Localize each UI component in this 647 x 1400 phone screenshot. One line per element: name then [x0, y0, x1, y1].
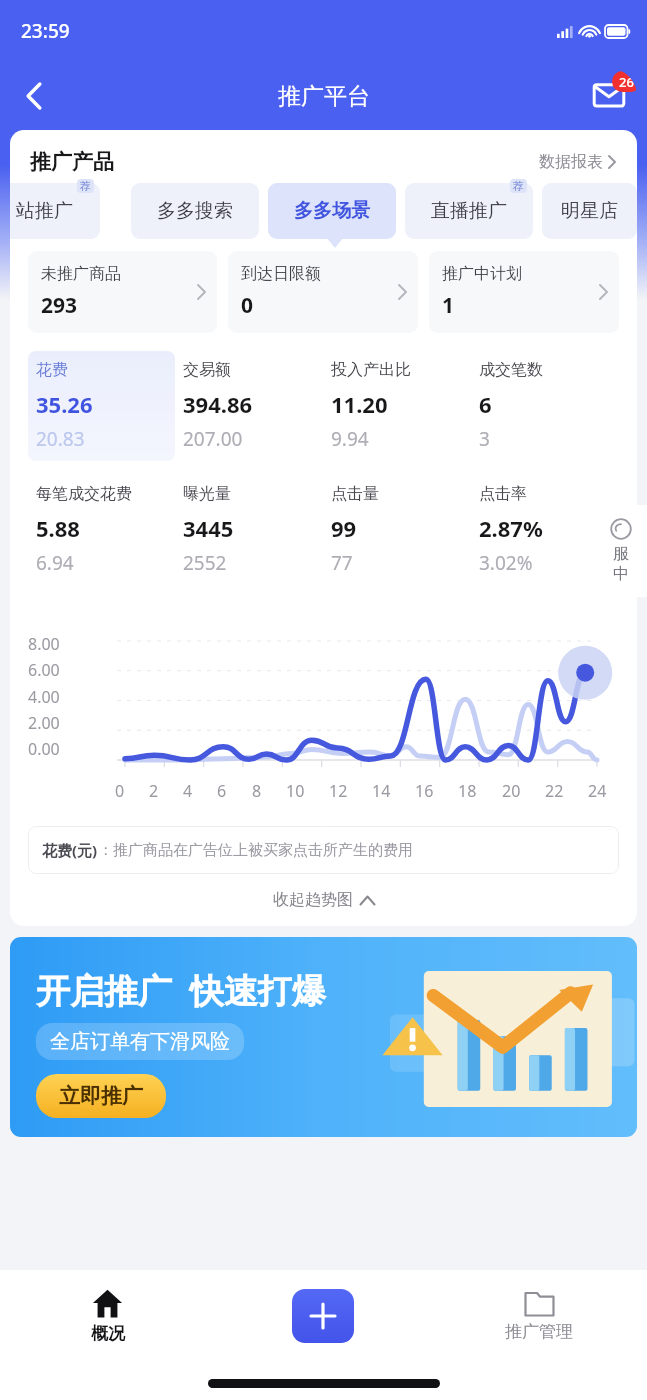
staticText: 立即推广	[59, 1083, 143, 1109]
button[interactable]: Service center	[595, 505, 647, 597]
staticText: 花费(元)	[42, 840, 98, 860]
staticText: ：推广商品在广告位上被买家点击所产生的费用	[98, 841, 413, 860]
staticText: 服	[613, 544, 629, 564]
staticText: 0	[115, 780, 125, 802]
button[interactable]: 站推广	[10, 183, 100, 239]
staticText: 概况	[91, 1323, 125, 1344]
staticText: 开启推广 快速打爆	[36, 967, 326, 1013]
button[interactable]: 开启推广 快速打爆	[10, 937, 637, 1137]
staticText: 18	[458, 780, 477, 802]
staticText: 207.00	[183, 426, 243, 452]
staticText: 8.00	[28, 633, 60, 655]
button[interactable]: 每笔成交花费	[28, 475, 175, 585]
staticText: 12	[329, 780, 348, 802]
staticText: 3.02%	[479, 550, 533, 576]
button[interactable]: 交易额	[175, 351, 323, 461]
staticText: 20.83	[36, 426, 85, 452]
button[interactable]: 收起趋势图	[10, 890, 637, 910]
staticText: 0.00	[28, 738, 60, 760]
staticText: 未推广商品	[41, 264, 121, 284]
staticText: 6.00	[28, 659, 60, 681]
staticText: 数据报表	[539, 152, 603, 172]
staticText: 24	[588, 780, 607, 802]
staticText: 投入产出比	[331, 360, 411, 380]
staticText: 成交笔数	[479, 360, 543, 380]
staticText: 推广平台	[278, 82, 370, 111]
staticText: 全店订单有下滑风险	[50, 1029, 230, 1054]
staticText: 推广管理	[505, 1321, 573, 1342]
staticText: 荐	[80, 179, 91, 193]
button[interactable]: Create	[292, 1289, 354, 1343]
staticText: 6.94	[36, 550, 74, 576]
staticText: 23:59	[21, 18, 70, 44]
staticText: 到达日限额	[241, 264, 321, 284]
staticText: 0	[241, 291, 254, 320]
staticText: 5.88	[36, 513, 80, 543]
staticText: 多多搜索	[157, 199, 233, 223]
button[interactable]: Back	[8, 70, 60, 122]
button[interactable]: 立即推广	[36, 1074, 166, 1118]
staticText: 2.87%	[479, 513, 543, 543]
button[interactable]: 明星店	[542, 183, 637, 239]
staticText: 荐	[513, 179, 524, 193]
staticText: 2.00	[28, 712, 60, 734]
staticText: 中	[613, 564, 629, 584]
staticText: 99	[331, 513, 357, 543]
button[interactable]: 点击量	[323, 475, 471, 585]
staticText: 明星店	[561, 199, 618, 223]
button[interactable]: 成交笔数	[471, 351, 619, 461]
staticText: 10	[286, 780, 305, 802]
staticText: 14	[372, 780, 391, 802]
button[interactable]: 点击率	[471, 475, 619, 585]
staticText: 点击量	[331, 484, 379, 504]
staticText: 1	[442, 291, 455, 320]
button[interactable]: 多多场景	[268, 183, 396, 239]
button[interactable]: 推广中计划	[429, 251, 619, 333]
staticText: 2	[149, 780, 159, 802]
button[interactable]: 投入产出比	[323, 351, 471, 461]
staticText: 26	[619, 73, 634, 91]
staticText: 推广中计划	[442, 264, 522, 284]
staticText: 6	[217, 780, 227, 802]
staticText: 点击率	[479, 484, 527, 504]
staticText: 花费	[36, 360, 68, 380]
button[interactable]: Messages, 26 unread	[581, 68, 637, 124]
staticText: 6	[479, 389, 492, 419]
staticText: 直播推广	[431, 199, 507, 223]
staticText: 22	[545, 780, 564, 802]
staticText: 8	[252, 780, 262, 802]
staticText: 2552	[183, 550, 227, 576]
button[interactable]: 到达日限额	[228, 251, 418, 333]
staticText: 11.20	[331, 389, 388, 419]
button[interactable]: 花费(元)	[28, 826, 619, 874]
button[interactable]: 推广管理	[431, 1270, 647, 1362]
staticText: 多多场景	[294, 199, 370, 223]
button[interactable]: 数据报表	[536, 149, 619, 175]
button[interactable]: 未推广商品	[28, 251, 217, 333]
staticText: 394.86	[183, 389, 253, 419]
button[interactable]: 概况	[0, 1270, 215, 1362]
staticText: 3445	[183, 513, 234, 543]
staticText: 3	[479, 426, 490, 452]
staticText: 20	[502, 780, 521, 802]
staticText: 293	[41, 291, 78, 320]
staticText: 站推广	[16, 199, 73, 223]
staticText: 4.00	[28, 686, 60, 708]
staticText: 16	[415, 780, 434, 802]
staticText: 77	[331, 550, 353, 576]
staticText: 9.94	[331, 426, 369, 452]
button[interactable]: 直播推广	[405, 183, 533, 239]
button[interactable]: 曝光量	[175, 475, 323, 585]
staticText: 4	[183, 780, 193, 802]
staticText: 每笔成交花费	[36, 484, 132, 504]
staticText: 曝光量	[183, 484, 231, 504]
button[interactable]: 多多搜索	[131, 183, 259, 239]
staticText: 推广产品	[30, 149, 114, 175]
button[interactable]: 花费	[28, 351, 175, 461]
staticText: 35.26	[36, 389, 93, 419]
staticText: 交易额	[183, 360, 231, 380]
staticText: 收起趋势图	[273, 890, 353, 910]
